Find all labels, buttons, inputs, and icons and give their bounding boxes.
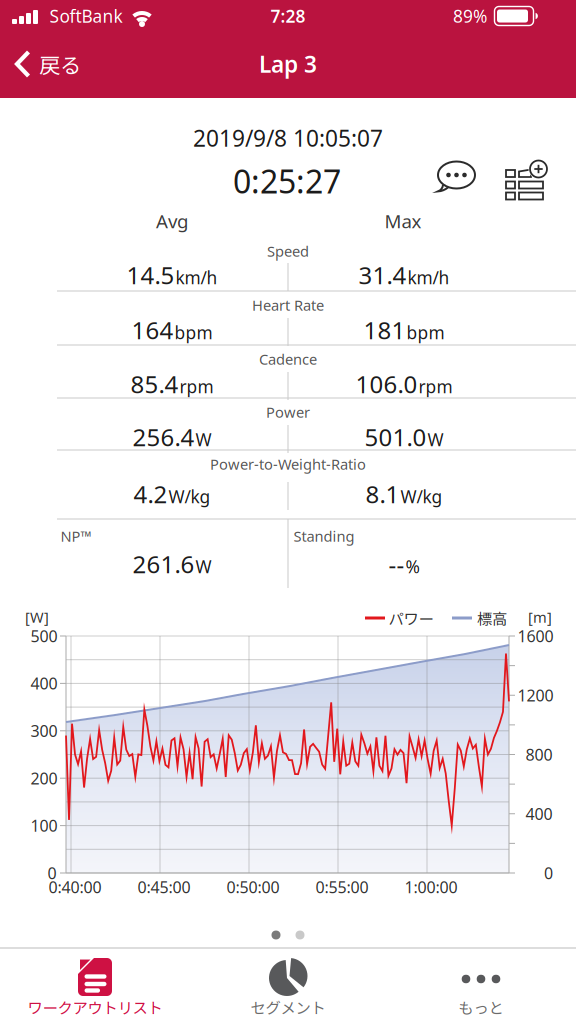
- staticText: 256.4: [132, 421, 194, 453]
- staticText: rpm: [179, 375, 213, 398]
- staticText: 1200: [517, 685, 553, 706]
- staticText: 164: [131, 314, 173, 346]
- button[interactable]: セグメント: [193, 948, 383, 1024]
- button[interactable]: もっと: [386, 948, 576, 1024]
- staticText: [W]: [25, 607, 49, 627]
- staticText: 31.4: [358, 259, 406, 291]
- staticText: 0:25:27: [233, 160, 341, 202]
- staticText: 標高: [477, 607, 507, 629]
- staticText: 7:28: [270, 4, 305, 27]
- staticText: rpm: [418, 375, 452, 398]
- staticText: Cadence: [259, 349, 317, 369]
- staticText: 261.6: [132, 548, 194, 580]
- button[interactable]: ワークアウトリスト: [0, 948, 190, 1024]
- staticText: 0:45:00: [137, 876, 190, 898]
- staticText: 1:00:00: [404, 876, 457, 898]
- staticText: Power: [266, 402, 310, 422]
- staticText: Standing: [293, 526, 354, 546]
- staticText: 300: [30, 720, 57, 741]
- button[interactable]: [505, 161, 549, 203]
- staticText: %: [405, 555, 419, 578]
- staticText: km/h: [407, 266, 449, 289]
- staticText: 200: [30, 768, 57, 789]
- staticText: 106.0: [355, 368, 417, 400]
- staticText: 0: [47, 862, 56, 884]
- staticText: 400: [525, 803, 552, 824]
- staticText: km/h: [175, 266, 217, 289]
- staticText: 0: [544, 862, 553, 884]
- button[interactable]: [434, 160, 478, 202]
- staticText: 89%: [453, 4, 487, 27]
- staticText: --: [388, 548, 404, 580]
- staticText: 0:40:00: [48, 876, 101, 898]
- staticText: 400: [30, 673, 57, 694]
- staticText: 85.4: [130, 368, 178, 400]
- button[interactable]: 戻る: [15, 35, 81, 93]
- staticText: Max: [384, 209, 421, 233]
- staticText: 100: [30, 815, 57, 836]
- staticText: 0:50:00: [226, 876, 279, 898]
- staticText: W/kg: [400, 485, 442, 508]
- staticText: Heart Rate: [252, 295, 324, 315]
- staticText: 800: [525, 744, 552, 765]
- staticText: 14.5: [126, 259, 174, 291]
- staticText: W/kg: [168, 485, 210, 508]
- staticText: Speed: [267, 241, 309, 261]
- staticText: bpm: [174, 321, 212, 344]
- staticText: bpm: [406, 321, 444, 344]
- staticText: 1600: [517, 625, 553, 647]
- staticText: もっと: [458, 996, 503, 1018]
- staticText: Lap 3: [259, 49, 317, 79]
- staticText: Avg: [156, 209, 188, 233]
- staticText: セグメント: [250, 996, 325, 1018]
- staticText: 181: [363, 314, 405, 346]
- staticText: SoftBank: [49, 4, 122, 27]
- staticText: [m]: [528, 607, 552, 627]
- staticText: 2019/9/8 10:05:07: [193, 123, 383, 153]
- staticText: W: [195, 428, 211, 451]
- staticText: 4.2: [133, 478, 167, 510]
- staticText: 500: [30, 625, 57, 647]
- staticText: パワー: [388, 607, 433, 629]
- staticText: 0:55:00: [315, 876, 368, 898]
- staticText: W: [195, 555, 211, 578]
- staticText: 戻る: [39, 49, 81, 79]
- staticText: ワークアウトリスト: [27, 996, 162, 1018]
- staticText: 8.1: [365, 478, 399, 510]
- staticText: W: [427, 428, 443, 451]
- staticText: NP™: [60, 526, 91, 546]
- staticText: 501.0: [364, 421, 426, 453]
- staticText: Power-to-Weight-Ratio: [210, 454, 366, 474]
